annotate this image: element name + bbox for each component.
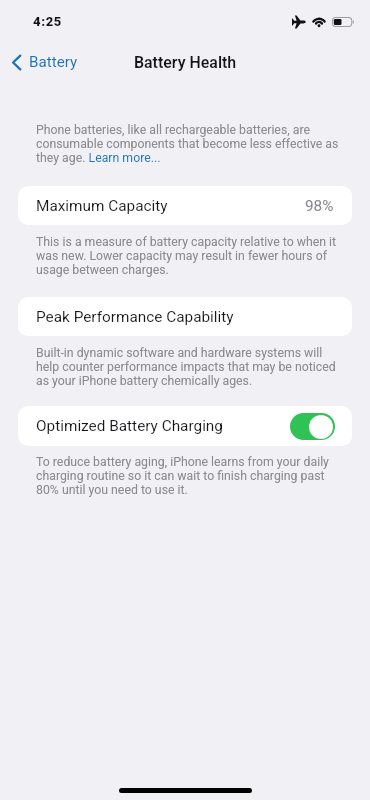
button[interactable]: Optimized Battery Charging toggle [290, 413, 335, 440]
staticText: 98% [305, 197, 334, 215]
staticText: This is a measure of battery capacity re… [36, 235, 342, 277]
button[interactable]: Battery [0, 50, 88, 74]
staticText: Optimized Battery Charging [36, 417, 223, 435]
staticText: Battery [29, 53, 78, 71]
button[interactable]: Maximum Capacity [18, 186, 352, 225]
button[interactable]: Peak Performance Capability [18, 297, 352, 336]
staticText: Maximum Capacity [36, 197, 168, 215]
staticText: Phone batteries, like all rechargeable b… [36, 123, 342, 165]
staticText: Built-in dynamic software and hardware s… [36, 346, 342, 388]
staticText: Battery Health [134, 53, 237, 72]
staticText: 4:25 [33, 14, 62, 29]
staticText: To reduce battery aging, iPhone learns f… [36, 455, 342, 497]
button[interactable]: Optimized Battery Charging [18, 406, 352, 446]
staticText: Peak Performance Capability [36, 308, 234, 326]
